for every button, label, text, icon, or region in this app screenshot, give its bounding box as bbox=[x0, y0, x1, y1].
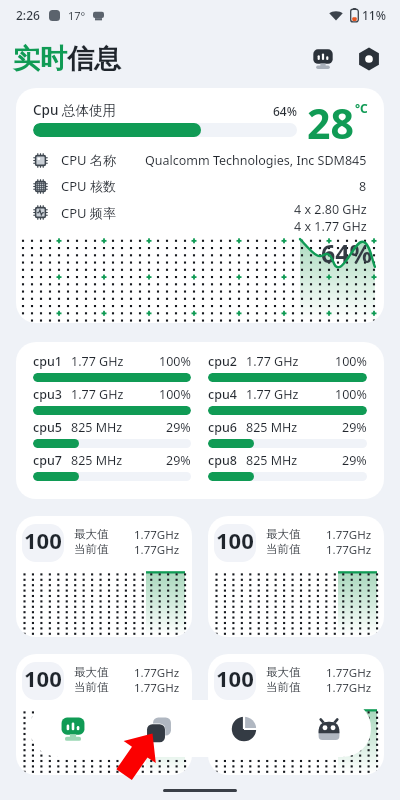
staticText: 825 MHz bbox=[71, 452, 123, 469]
staticText: 1.77 GHz bbox=[246, 353, 299, 370]
staticText: Qualcomm Technologies, Inc SDM845 bbox=[145, 152, 367, 169]
staticText: cpu4 bbox=[208, 386, 237, 403]
staticText: CPU 核数 bbox=[61, 177, 116, 195]
staticText: CPU 频率 bbox=[61, 204, 116, 222]
staticText: 1.77 GHz bbox=[246, 386, 299, 403]
staticText: 100% bbox=[159, 386, 191, 403]
staticText: 1.77GHz bbox=[326, 527, 372, 543]
button[interactable]: System bbox=[286, 700, 371, 757]
staticText: 1.77GHz bbox=[134, 680, 180, 696]
staticText: 825 MHz bbox=[246, 419, 298, 436]
staticText: 当前值 bbox=[74, 542, 109, 556]
button[interactable]: Settings bbox=[354, 44, 384, 74]
staticText: 1.77GHz bbox=[326, 680, 372, 696]
staticText: cpu7 bbox=[33, 452, 62, 469]
button[interactable]: 100 bbox=[16, 516, 192, 637]
staticText: 28 bbox=[307, 95, 354, 147]
staticText: cpu6 bbox=[208, 419, 237, 436]
staticText: Cpu 总体使用 bbox=[33, 101, 116, 119]
staticText: cpu2 bbox=[208, 353, 237, 370]
staticText: cpu3 bbox=[33, 386, 62, 403]
staticText: 1.77GHz bbox=[134, 665, 180, 681]
staticText: 最大值 bbox=[74, 665, 109, 679]
staticText: 64% bbox=[273, 103, 297, 119]
staticText: 29% bbox=[166, 419, 191, 436]
staticText: 100 bbox=[216, 525, 254, 555]
staticText: 825 MHz bbox=[71, 419, 123, 436]
staticText: 1.77GHz bbox=[326, 665, 372, 681]
button[interactable]: 100 bbox=[208, 516, 384, 637]
staticText: 最大值 bbox=[266, 665, 301, 679]
button[interactable]: Realtime info bbox=[30, 700, 116, 757]
staticText: 实时 bbox=[13, 42, 67, 76]
staticText: 最大值 bbox=[74, 527, 109, 541]
staticText: 100% bbox=[335, 353, 367, 370]
staticText: cpu1 bbox=[33, 353, 62, 370]
staticText: 最大值 bbox=[266, 527, 301, 541]
button[interactable]: Monitor bbox=[308, 44, 338, 74]
staticText: 1.77GHz bbox=[134, 542, 180, 558]
staticText: 100 bbox=[216, 663, 254, 693]
staticText: 4 x 1.77 GHz bbox=[294, 218, 367, 235]
button[interactable]: 100 bbox=[16, 654, 192, 775]
staticText: 29% bbox=[342, 452, 367, 469]
staticText: 11% bbox=[362, 7, 386, 23]
staticText: 100 bbox=[24, 525, 62, 555]
button[interactable]: cpu1 bbox=[16, 342, 384, 499]
staticText: 1.77GHz bbox=[134, 527, 180, 543]
button[interactable]: Storage bbox=[201, 700, 286, 757]
staticText: 1.77 GHz bbox=[71, 386, 124, 403]
staticText: 1.77GHz bbox=[326, 542, 372, 558]
staticText: 29% bbox=[342, 419, 367, 436]
staticText: 100% bbox=[335, 386, 367, 403]
staticText: 4 x 2.80 GHz bbox=[294, 201, 367, 218]
staticText: 当前值 bbox=[266, 542, 301, 556]
staticText: 100 bbox=[24, 663, 62, 693]
staticText: 17° bbox=[68, 8, 86, 23]
button[interactable]: Apps bbox=[116, 700, 201, 757]
staticText: CPU 名称 bbox=[61, 151, 116, 169]
staticText: 2:26 bbox=[16, 7, 40, 23]
button[interactable]: Cpu 总体使用 bbox=[16, 88, 384, 323]
staticText: 当前值 bbox=[266, 680, 301, 694]
staticText: 8 bbox=[359, 178, 367, 195]
staticText: 100% bbox=[159, 353, 191, 370]
staticText: 信息 bbox=[67, 42, 121, 76]
staticText: 1.77 GHz bbox=[71, 353, 124, 370]
staticText: 64% bbox=[321, 236, 373, 270]
staticText: °C bbox=[355, 100, 368, 116]
staticText: 825 MHz bbox=[246, 452, 298, 469]
staticText: 当前值 bbox=[74, 680, 109, 694]
staticText: 29% bbox=[166, 452, 191, 469]
button[interactable]: 100 bbox=[208, 654, 384, 775]
staticText: cpu8 bbox=[208, 452, 237, 469]
staticText: cpu5 bbox=[33, 419, 62, 436]
